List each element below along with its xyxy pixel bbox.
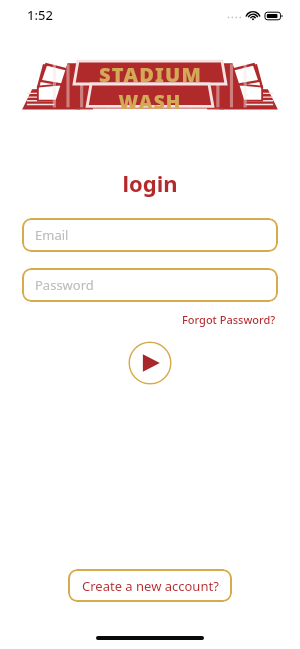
button[interactable]: Forgot Password? (180, 310, 278, 329)
button[interactable]: Log in (128, 341, 172, 385)
button[interactable]: Password (22, 268, 278, 302)
staticText: 1:52 (27, 6, 53, 24)
button[interactable]: Create a new account? (68, 569, 232, 602)
staticText: Create a new account? (82, 577, 219, 595)
staticText: Password (35, 276, 94, 294)
staticText: login (0, 168, 300, 198)
other: Stadium Wash logo (19, 58, 281, 110)
button[interactable]: Email (22, 218, 278, 252)
staticText: WASH (118, 89, 182, 110)
staticText: Forgot Password? (182, 312, 276, 327)
staticText: STADIUM (99, 61, 202, 88)
staticText: Email (35, 226, 69, 244)
